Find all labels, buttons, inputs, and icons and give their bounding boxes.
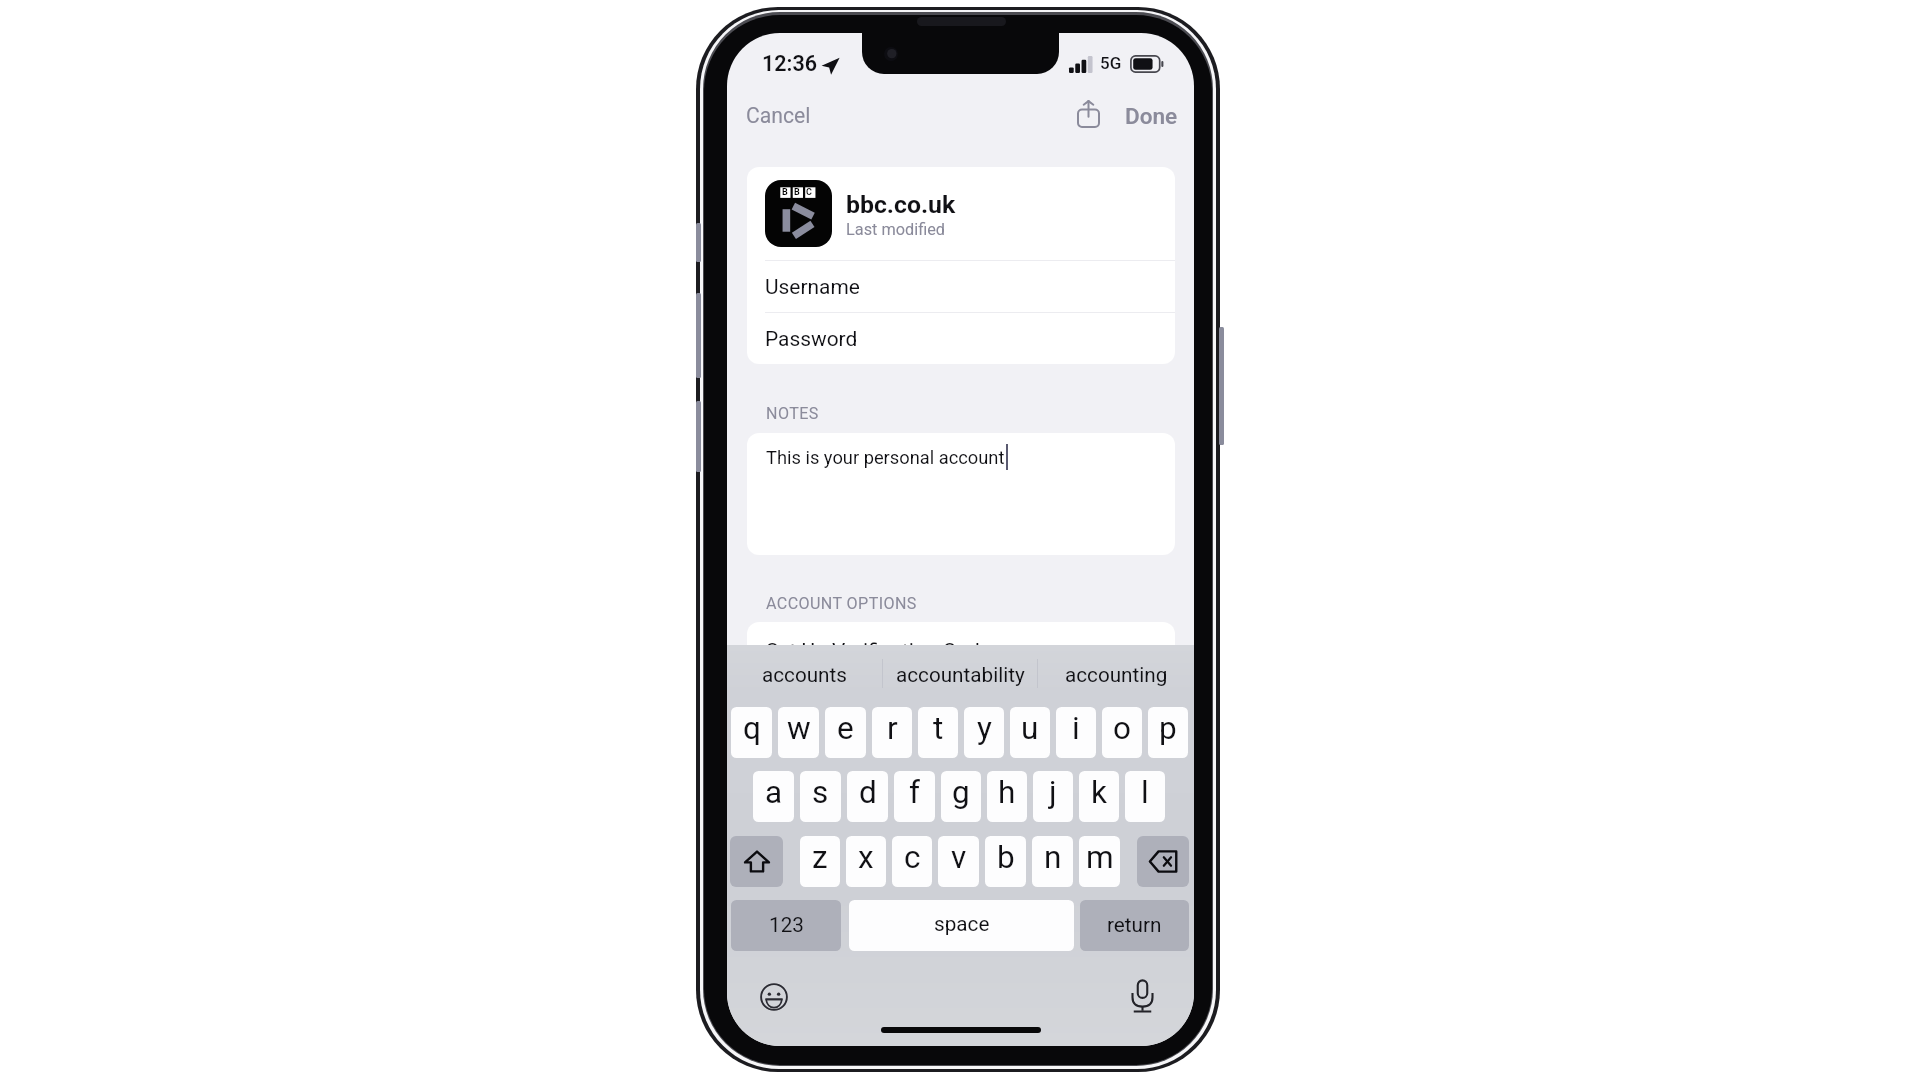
button[interactable]: Emoji keyboard	[760, 983, 788, 1011]
button[interactable]: j	[1033, 771, 1073, 822]
button[interactable]: space	[849, 900, 1074, 951]
staticText: y	[977, 710, 992, 747]
button[interactable]: This is your personal account	[747, 433, 1175, 555]
staticText: h	[998, 774, 1016, 811]
staticText: Cancel	[746, 103, 811, 128]
button[interactable]: r	[872, 707, 912, 758]
button[interactable]: q	[731, 707, 772, 758]
button[interactable]: f	[894, 771, 935, 822]
staticText: o	[1113, 710, 1131, 747]
staticText: Last modified	[846, 220, 946, 239]
button[interactable]: s	[800, 771, 841, 822]
staticText: bbc.co.uk	[846, 190, 956, 219]
button[interactable]: k	[1079, 771, 1119, 822]
staticText: v	[951, 839, 967, 876]
button[interactable]: b	[985, 836, 1026, 887]
staticText: This is your personal account	[766, 447, 1005, 468]
staticText: x	[858, 839, 874, 876]
button[interactable]: return	[1080, 900, 1189, 951]
staticText: Password	[765, 327, 858, 351]
staticText: q	[743, 710, 761, 747]
staticText: Username	[765, 275, 860, 299]
staticText: p	[1159, 710, 1177, 747]
staticText: 12:36	[762, 51, 817, 76]
button[interactable]: g	[941, 771, 981, 822]
button[interactable]: accounts	[727, 655, 882, 695]
button[interactable]: z	[800, 836, 840, 887]
staticText: accounts	[762, 663, 847, 687]
button[interactable]: w	[778, 707, 819, 758]
staticText: s	[812, 774, 829, 811]
button[interactable]: Done	[1113, 95, 1190, 137]
staticText: n	[1044, 839, 1062, 876]
staticText: f	[909, 774, 920, 811]
staticText: w	[787, 710, 811, 747]
staticText: return	[1107, 913, 1162, 937]
staticText: d	[859, 774, 877, 811]
button[interactable]: Dictation	[1130, 979, 1155, 1014]
button[interactable]: Share	[1069, 95, 1108, 133]
button[interactable]: 123	[731, 900, 841, 951]
button[interactable]: e	[825, 707, 866, 758]
button[interactable]: n	[1032, 836, 1073, 887]
staticText: ACCOUNT OPTIONS	[766, 594, 917, 613]
staticText: 123	[769, 913, 804, 937]
button[interactable]: p	[1148, 707, 1188, 758]
button[interactable]: u	[1010, 707, 1050, 758]
button[interactable]: d	[847, 771, 888, 822]
staticText: Done	[1125, 103, 1178, 129]
button[interactable]: h	[987, 771, 1027, 822]
staticText: k	[1091, 774, 1107, 811]
button[interactable]: a	[753, 771, 794, 822]
staticText: j	[1049, 774, 1057, 811]
staticText: z	[812, 839, 828, 876]
button[interactable]: Password	[747, 313, 1175, 364]
button[interactable]: o	[1102, 707, 1142, 758]
button[interactable]: m	[1079, 836, 1120, 887]
staticText: B	[794, 187, 800, 198]
button[interactable]: y	[964, 707, 1004, 758]
staticText: C	[806, 187, 812, 198]
staticText: m	[1086, 839, 1114, 876]
staticText: space	[934, 912, 990, 936]
staticText: NOTES	[766, 404, 819, 423]
staticText: Set Up Verification Code	[766, 639, 991, 663]
staticText: 5G	[1100, 53, 1122, 73]
button[interactable]: accounting	[1038, 655, 1194, 695]
button[interactable]: t	[918, 707, 958, 758]
staticText: B	[782, 187, 788, 198]
staticText: g	[952, 774, 970, 811]
staticText: r	[887, 710, 898, 747]
button[interactable]: l	[1125, 771, 1165, 822]
staticText: c	[904, 839, 921, 876]
button[interactable]: Username	[747, 261, 1175, 312]
button[interactable]: i	[1056, 707, 1096, 758]
button[interactable]: Set Up Verification Code	[747, 622, 1175, 692]
button[interactable]: Cancel	[734, 95, 823, 136]
staticText: a	[765, 774, 783, 811]
staticText: b	[997, 839, 1015, 876]
staticText: i	[1072, 710, 1080, 747]
staticText: accounting	[1065, 663, 1168, 687]
button[interactable]: v	[938, 836, 979, 887]
staticText: l	[1141, 774, 1149, 811]
button[interactable]: c	[892, 836, 932, 887]
staticText: t	[933, 710, 944, 747]
button[interactable]: Backspace	[1137, 836, 1189, 887]
button[interactable]: Shift	[730, 836, 783, 887]
button[interactable]: accountability	[882, 655, 1038, 695]
staticText: accountability	[896, 663, 1025, 687]
staticText: e	[837, 710, 854, 747]
button[interactable]: B	[747, 167, 1175, 260]
button[interactable]: x	[846, 836, 886, 887]
staticText: u	[1021, 710, 1039, 747]
